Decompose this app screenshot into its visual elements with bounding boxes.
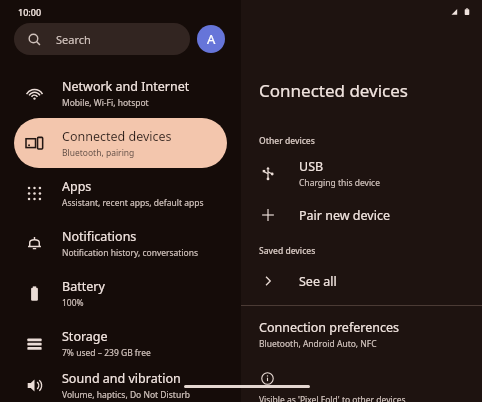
button[interactable]: Sound and vibration	[14, 368, 227, 402]
staticText: 100%	[62, 297, 84, 309]
button[interactable]: USB	[241, 152, 482, 194]
button[interactable]: Battery	[14, 268, 227, 318]
staticText: See all	[299, 273, 337, 290]
staticText: 7% used – 239 GB free	[62, 347, 151, 359]
staticText: Volume, haptics, Do Not Disturb	[62, 389, 190, 401]
staticText: A	[207, 30, 216, 48]
staticText: Search	[56, 32, 91, 47]
staticText: Charging this device	[299, 177, 380, 189]
button[interactable]: See all	[241, 260, 482, 302]
button[interactable]: Search	[14, 23, 190, 55]
button[interactable]: Pair new device	[241, 194, 482, 236]
staticText: Battery	[62, 278, 105, 295]
staticText: Assistant, recent apps, default apps	[62, 197, 204, 209]
staticText: Other devices	[259, 135, 315, 147]
staticText: USB	[299, 158, 324, 175]
staticText: Apps	[62, 178, 92, 195]
staticText: Notification history, conversations	[62, 247, 199, 259]
staticText: Saved devices	[259, 245, 316, 257]
staticText: Mobile, Wi-Fi, hotspot	[62, 97, 149, 109]
button[interactable]: Connection preferences	[241, 317, 482, 352]
button[interactable]: Network and Internet	[14, 68, 227, 118]
staticText: Connected devices	[259, 79, 409, 102]
staticText: Connected devices	[62, 128, 172, 145]
button[interactable]: Notifications	[14, 218, 227, 268]
staticText: Bluetooth, Android Auto, NFC	[259, 338, 377, 350]
staticText: Connection preferences	[259, 319, 399, 336]
staticText: Storage	[62, 328, 108, 345]
staticText: Pair new device	[299, 207, 390, 224]
button[interactable]: Account	[197, 25, 225, 53]
button[interactable]: Apps	[14, 168, 227, 218]
staticText: Notifications	[62, 228, 137, 245]
staticText: Visible as 'Pixel Fold' to other devices	[259, 394, 406, 402]
staticText: 10:00	[18, 6, 42, 18]
staticText: Sound and vibration	[62, 370, 181, 387]
button[interactable]: Storage	[14, 318, 227, 368]
staticText: Bluetooth, pairing	[62, 147, 135, 159]
button[interactable]: Connected devices	[14, 118, 227, 168]
button[interactable]: Info	[259, 370, 275, 386]
staticText: Network and Internet	[62, 78, 190, 95]
